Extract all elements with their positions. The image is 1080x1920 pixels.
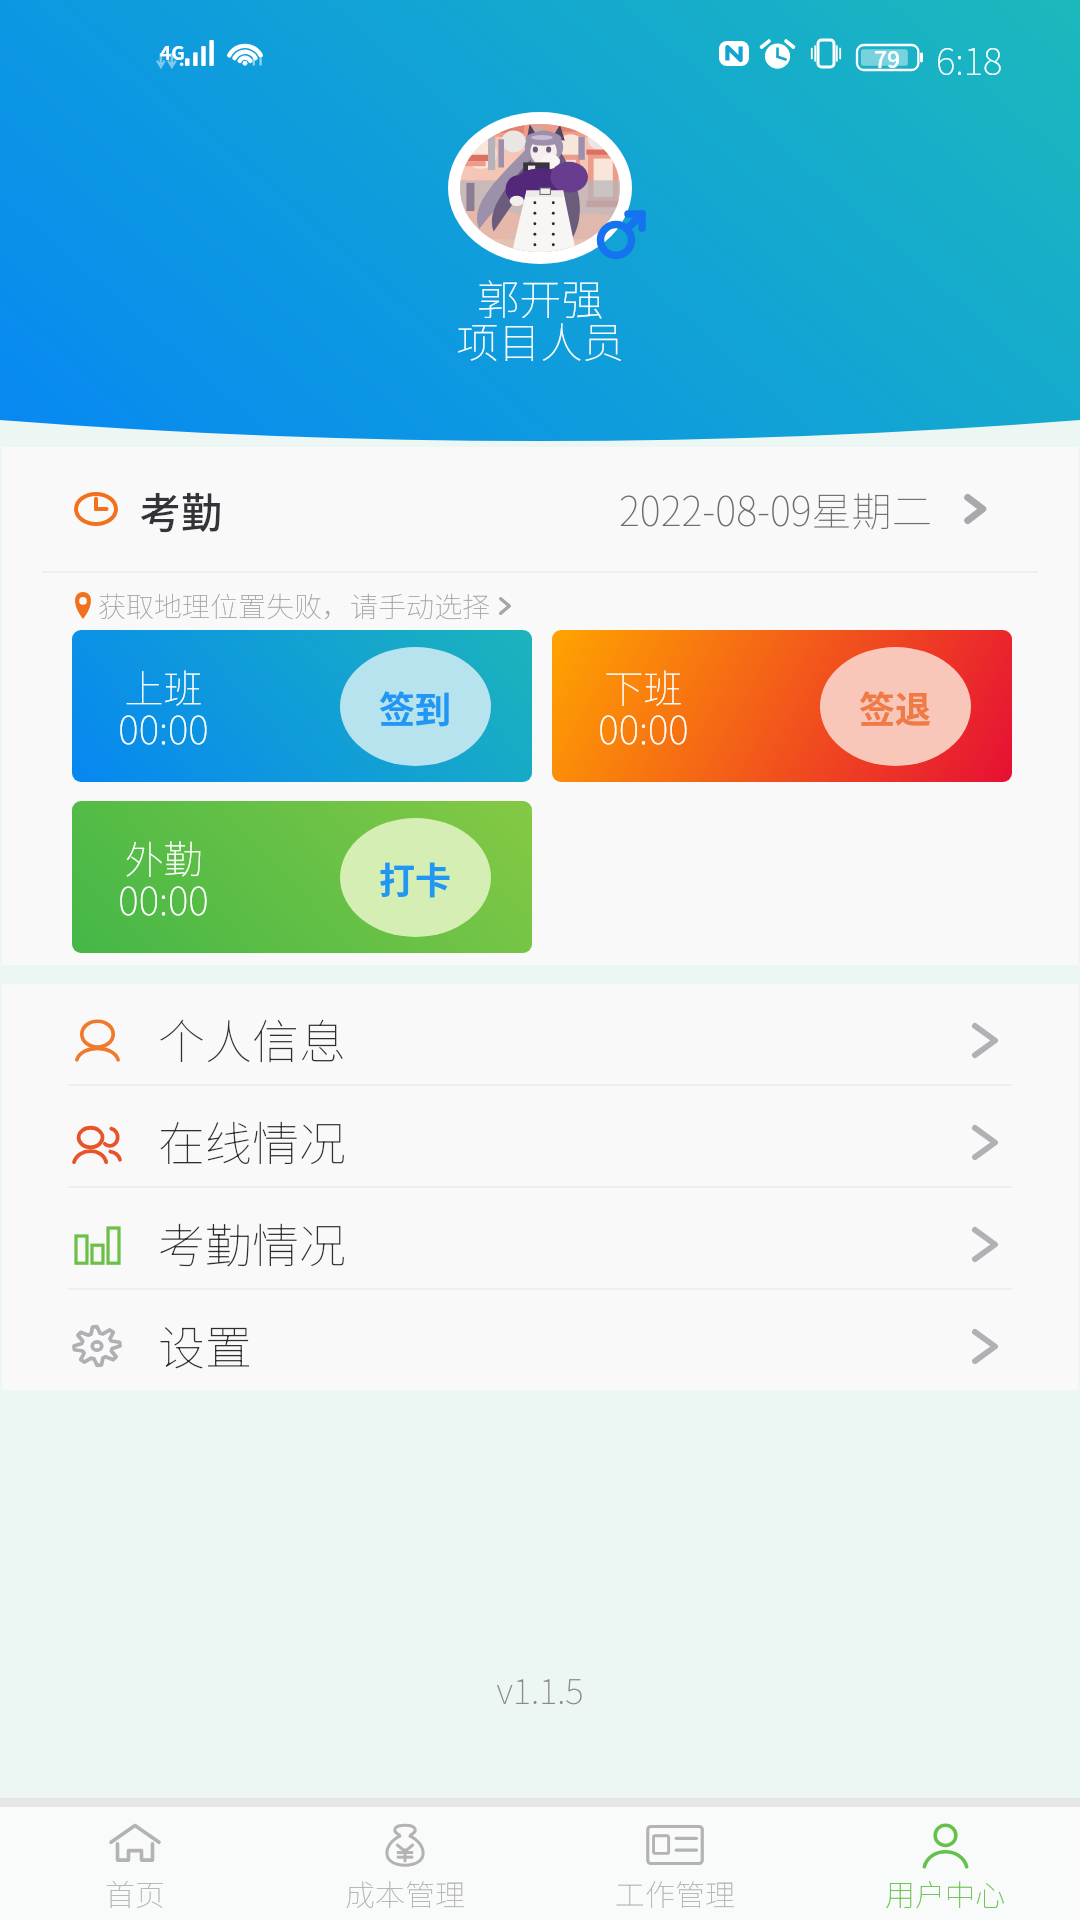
staticText: 获取地理位置失败，请手动选择 — [98, 585, 491, 626]
staticText: 6:18 — [936, 32, 1003, 84]
staticText: 工作管理 — [615, 1871, 735, 1914]
staticText: 成本管理 — [345, 1871, 465, 1914]
staticText: 签到 — [379, 681, 452, 733]
staticText: 用户中心 — [885, 1871, 1005, 1914]
button[interactable]: 用户中心 — [810, 1807, 1080, 1920]
staticText: 设置 — [158, 1310, 252, 1378]
button[interactable]: 获取地理位置失败，请手动选择 — [2, 573, 1078, 626]
staticText: 首页 — [105, 1871, 165, 1914]
staticText: 郭开强 项目人员 — [456, 266, 625, 370]
button[interactable]: 成本管理 — [270, 1807, 540, 1920]
staticText: 打卡 — [379, 852, 452, 904]
staticText: 4G — [160, 38, 185, 66]
staticText: 个人信息 — [158, 1004, 346, 1072]
button[interactable]: 在线情况 — [2, 1086, 1078, 1186]
staticText: 签退 — [859, 681, 932, 733]
staticText: 79 — [874, 41, 901, 74]
button[interactable]: 考勤情况 — [2, 1188, 1078, 1288]
staticText: 在线情况 — [158, 1106, 346, 1174]
button[interactable]: 个人信息 — [2, 984, 1078, 1084]
button[interactable]: 设置 — [2, 1290, 1078, 1390]
button[interactable]: 考勤 — [2, 447, 1078, 571]
button[interactable]: 外勤 00:00 — [72, 801, 532, 953]
staticText: v1.1.5 — [0, 1663, 1080, 1714]
button[interactable]: 工作管理 — [540, 1807, 810, 1920]
staticText: 考勤情况 — [158, 1208, 346, 1276]
button[interactable]: 首页 — [0, 1807, 270, 1920]
staticText: 上班 00:00 — [118, 658, 209, 755]
staticText: 考勤 — [140, 480, 222, 539]
button[interactable]: 下班 00:00 — [552, 630, 1012, 782]
button[interactable]: Profile avatar — [428, 108, 652, 266]
button[interactable]: 上班 00:00 — [72, 630, 532, 782]
staticText: 下班 00:00 — [598, 658, 689, 755]
staticText: 2022-08-09星期二 — [619, 480, 932, 538]
staticText: 外勤 00:00 — [118, 829, 209, 926]
